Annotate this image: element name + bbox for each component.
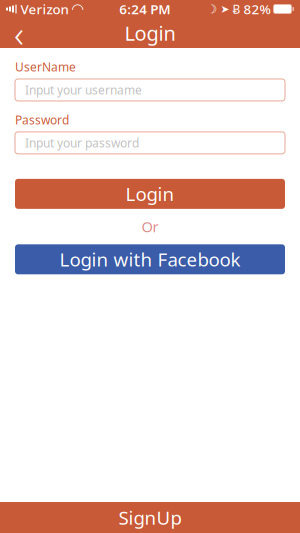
staticText: Login [125, 181, 174, 206]
staticText: SignUp [118, 505, 181, 530]
staticText: Input your password [25, 135, 139, 151]
button[interactable]: SignUp [0, 502, 300, 533]
staticText: ➤ [220, 3, 229, 15]
staticText: ◠ [72, 1, 83, 17]
staticText: Login with Facebook [59, 247, 240, 272]
button[interactable]: Back [0, 18, 38, 48]
staticText: 82% [243, 0, 270, 18]
staticText: Verizon [20, 0, 68, 18]
staticText: ☽ [206, 2, 217, 16]
staticText: 6:24 PM [119, 0, 170, 18]
button[interactable]: Login with Facebook [15, 244, 285, 274]
staticText: Password [15, 112, 69, 128]
staticText: UserName [15, 59, 76, 75]
staticText: Or [141, 217, 158, 236]
staticText: Input your username [25, 82, 142, 98]
staticText: Ƀ [232, 1, 240, 17]
button[interactable]: Login [15, 179, 285, 209]
staticText: Login [124, 20, 175, 46]
staticText: ‹ [14, 8, 24, 58]
